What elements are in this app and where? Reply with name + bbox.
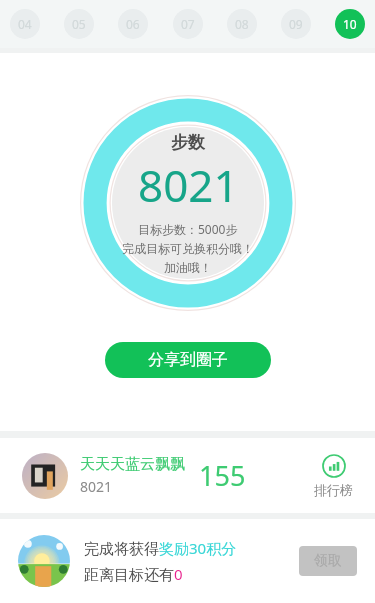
staticText: 10 <box>343 16 357 32</box>
button[interactable]: 天天天蓝云飘飘 <box>0 438 375 513</box>
button[interactable]: 09 <box>281 9 311 39</box>
staticText: 排行榜 <box>314 482 353 498</box>
button[interactable]: 10 <box>335 9 365 39</box>
staticText: 08 <box>235 16 249 32</box>
staticText: 完成将获得奖励30积分 <box>84 538 237 558</box>
staticText: 加油哦！ <box>164 260 212 275</box>
staticText: 分享到圈子 <box>148 350 228 370</box>
staticText: 完成目标可兑换积分哦！ <box>122 241 254 256</box>
button[interactable]: 05 <box>64 9 94 39</box>
staticText: 07 <box>181 16 195 32</box>
staticText: 155 <box>199 457 246 494</box>
staticText: 8021 <box>80 477 113 496</box>
staticText: 06 <box>126 16 140 32</box>
button[interactable]: 分享到圈子 <box>105 342 271 378</box>
button[interactable]: 04 <box>10 9 40 39</box>
staticText: 步数 <box>171 132 205 153</box>
staticText: 目标步数：5000步 <box>138 221 238 237</box>
staticText: 领取 <box>314 552 342 570</box>
button[interactable]: 06 <box>118 9 148 39</box>
button[interactable]: 08 <box>227 9 257 39</box>
staticText: 距离目标还有0 <box>84 564 183 584</box>
button[interactable]: 07 <box>173 9 203 39</box>
staticText: 09 <box>289 16 303 32</box>
button[interactable]: 排行榜 <box>310 450 357 502</box>
staticText: 04 <box>18 16 32 32</box>
staticText: 8021 <box>138 155 239 215</box>
button[interactable]: 领取 <box>299 546 357 576</box>
staticText: 天天天蓝云飘飘 <box>80 455 185 474</box>
staticText: 05 <box>72 16 86 32</box>
